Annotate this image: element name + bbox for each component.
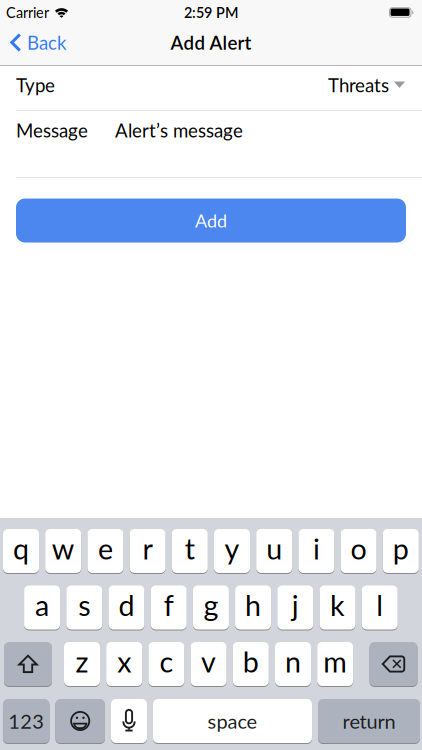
staticText: j bbox=[292, 588, 299, 622]
button[interactable]: q bbox=[3, 529, 39, 573]
button[interactable]: z bbox=[64, 642, 100, 686]
staticText: c bbox=[159, 644, 173, 679]
button[interactable]: k bbox=[319, 585, 355, 629]
staticText: w bbox=[52, 531, 75, 566]
button[interactable]: r bbox=[130, 529, 166, 573]
button[interactable]: 123 bbox=[3, 699, 49, 743]
button[interactable]: i bbox=[298, 529, 334, 573]
staticText: Add Alert bbox=[170, 31, 251, 54]
staticText: b bbox=[243, 644, 259, 679]
button[interactable]: d bbox=[108, 585, 144, 629]
button[interactable]: h bbox=[235, 585, 271, 629]
button[interactable]: space bbox=[153, 699, 312, 743]
button[interactable]: Back bbox=[0, 34, 66, 56]
button[interactable] bbox=[55, 699, 105, 743]
staticText: d bbox=[118, 588, 134, 622]
button[interactable]: w bbox=[45, 529, 81, 573]
staticText: space bbox=[207, 709, 257, 733]
button[interactable]: p bbox=[383, 529, 419, 573]
staticText: Message bbox=[16, 119, 88, 141]
staticText: o bbox=[351, 531, 367, 566]
staticText: r bbox=[143, 531, 153, 566]
staticText: x bbox=[117, 644, 131, 679]
staticText: m bbox=[323, 644, 347, 679]
button[interactable]: Type bbox=[0, 66, 422, 110]
staticText: u bbox=[266, 531, 282, 566]
button[interactable]: x bbox=[106, 642, 142, 686]
staticText: f bbox=[164, 588, 174, 622]
button[interactable]: s bbox=[66, 585, 102, 629]
staticText: q bbox=[13, 531, 29, 566]
staticText: Carrier bbox=[6, 4, 49, 21]
staticText: h bbox=[245, 588, 261, 622]
button[interactable]: Add bbox=[16, 198, 406, 242]
staticText: Alert’s message bbox=[115, 119, 243, 141]
staticText: return bbox=[342, 709, 395, 733]
button[interactable]: b bbox=[233, 642, 269, 686]
staticText: i bbox=[313, 531, 320, 566]
button[interactable]: m bbox=[317, 642, 353, 686]
button[interactable] bbox=[4, 642, 52, 686]
staticText: Back bbox=[27, 31, 66, 54]
staticText: n bbox=[285, 644, 301, 679]
button[interactable] bbox=[369, 642, 417, 686]
button[interactable]: v bbox=[191, 642, 227, 686]
staticText: k bbox=[330, 588, 345, 622]
staticText: Threats bbox=[328, 74, 389, 96]
button[interactable]: c bbox=[148, 642, 184, 686]
staticText: 123 bbox=[8, 709, 44, 733]
button[interactable]: a bbox=[24, 585, 60, 629]
button[interactable]: t bbox=[172, 529, 208, 573]
button[interactable]: o bbox=[341, 529, 377, 573]
staticText: Add bbox=[195, 210, 227, 231]
staticText: p bbox=[393, 531, 409, 566]
button[interactable]: l bbox=[362, 585, 398, 629]
button[interactable]: Message bbox=[0, 111, 422, 177]
button[interactable]: g bbox=[193, 585, 229, 629]
button[interactable]: e bbox=[87, 529, 123, 573]
button[interactable]: return bbox=[318, 699, 420, 743]
staticText: v bbox=[201, 644, 216, 679]
staticText: g bbox=[203, 588, 218, 622]
staticText: e bbox=[98, 531, 113, 566]
button[interactable] bbox=[111, 699, 147, 743]
button[interactable]: y bbox=[214, 529, 250, 573]
button[interactable]: n bbox=[275, 642, 311, 686]
button[interactable]: j bbox=[277, 585, 313, 629]
button[interactable]: f bbox=[151, 585, 187, 629]
staticText: y bbox=[224, 531, 239, 566]
staticText: l bbox=[376, 588, 383, 622]
staticText: Type bbox=[16, 74, 55, 96]
button[interactable]: u bbox=[256, 529, 292, 573]
staticText: a bbox=[35, 588, 49, 622]
staticText: z bbox=[75, 644, 88, 679]
staticText: s bbox=[78, 588, 90, 622]
staticText: t bbox=[185, 531, 195, 566]
staticText: 2:59 PM bbox=[184, 4, 238, 21]
